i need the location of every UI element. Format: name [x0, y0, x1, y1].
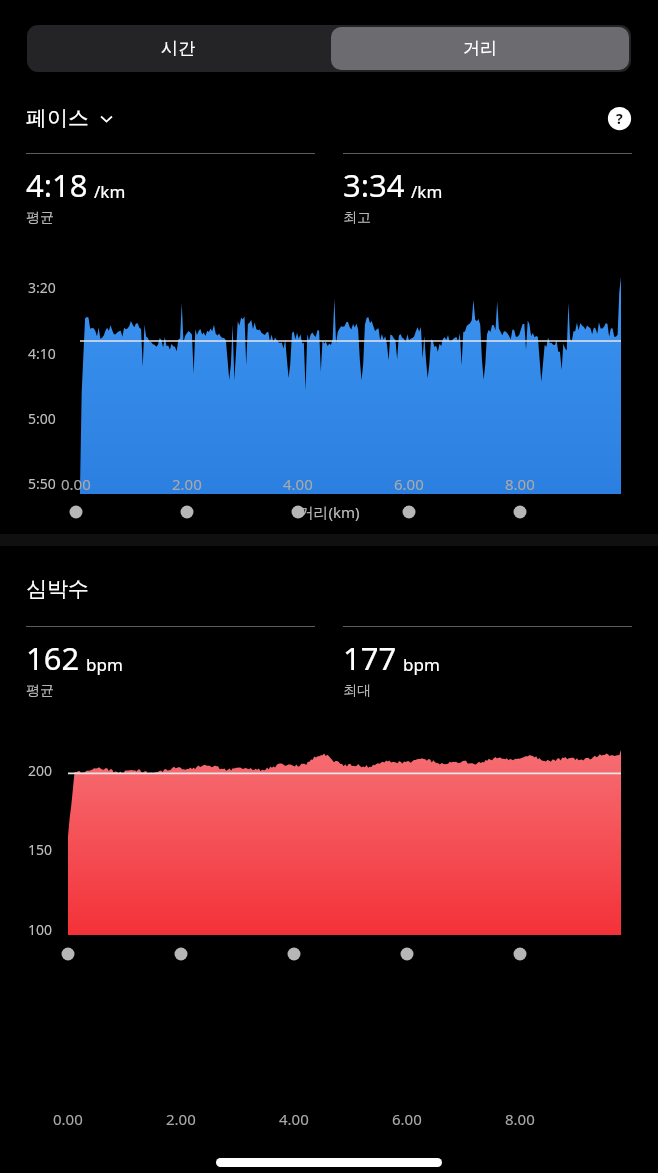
- button[interactable]: 거리: [331, 27, 629, 70]
- staticText: 5:00: [28, 409, 56, 428]
- staticText: 페이스: [26, 105, 89, 131]
- staticText: 심박수: [26, 576, 89, 602]
- staticText: 5:50: [28, 474, 56, 493]
- staticText: 100: [28, 920, 53, 939]
- staticText: /km: [411, 180, 443, 203]
- staticText: 최대: [343, 682, 371, 700]
- staticText: bpm: [403, 653, 440, 676]
- staticText: ?: [616, 109, 623, 128]
- staticText: 4:18: [26, 164, 88, 206]
- staticText: 거리(km): [0, 502, 658, 522]
- staticText: 평균: [26, 682, 54, 700]
- staticText: 0.00: [53, 1109, 83, 1129]
- staticText: 시간: [161, 38, 195, 59]
- staticText: 3:34: [343, 164, 405, 206]
- staticText: 8.00: [505, 1109, 535, 1129]
- button[interactable]: 페이스: [26, 105, 115, 131]
- staticText: 6.00: [392, 1109, 422, 1129]
- staticText: 4.00: [283, 474, 313, 494]
- staticText: 162: [26, 637, 80, 679]
- staticText: 4:10: [28, 344, 56, 363]
- staticText: 6.00: [394, 474, 424, 494]
- staticText: 4.00: [279, 1109, 309, 1129]
- staticText: /km: [94, 180, 126, 203]
- staticText: 2.00: [166, 1109, 196, 1129]
- staticText: 최고: [343, 209, 371, 227]
- staticText: 2.00: [172, 474, 202, 494]
- staticText: 177: [343, 637, 397, 679]
- button[interactable]: 도움말: [607, 106, 632, 131]
- staticText: 0.00: [61, 474, 91, 494]
- staticText: 150: [28, 840, 53, 859]
- staticText: 8.00: [505, 474, 535, 494]
- staticText: bpm: [86, 653, 123, 676]
- staticText: 거리: [463, 38, 497, 59]
- button[interactable]: 시간: [27, 25, 329, 72]
- staticText: 3:20: [28, 278, 56, 297]
- staticText: 200: [28, 761, 53, 780]
- staticText: 평균: [26, 209, 54, 227]
